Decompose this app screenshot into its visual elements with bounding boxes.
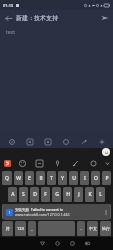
staticText: D [33, 191, 37, 198]
staticText: L [99, 191, 102, 198]
staticText: 换行 [102, 226, 110, 231]
button[interactable]: Search [84, 157, 102, 170]
staticText: F [44, 191, 47, 198]
staticText: C [45, 208, 49, 215]
staticText: J [78, 191, 80, 198]
button[interactable]: Attachment option 3 [41, 135, 54, 148]
staticText: 安装失败 Failed to connect to [15, 207, 64, 212]
button[interactable]: Recents [65, 237, 80, 250]
staticText: V [56, 208, 60, 215]
button[interactable]: Attachment option 6 [95, 135, 108, 148]
staticText: Z [23, 208, 26, 215]
button[interactable]: L [96, 187, 105, 202]
staticText: P [105, 175, 109, 182]
staticText: G [55, 191, 59, 198]
button[interactable]: E [25, 171, 34, 185]
staticText: Y [61, 175, 64, 182]
button[interactable]: F [41, 187, 50, 202]
button[interactable]: S [19, 187, 28, 202]
staticText: B [67, 208, 71, 215]
staticText: R [39, 175, 43, 182]
button[interactable]: Emoji [14, 157, 31, 170]
staticText: 123 [17, 226, 24, 231]
button[interactable]: . [77, 221, 85, 236]
staticText: 01:15 [3, 3, 14, 8]
button[interactable]: , [28, 221, 36, 236]
button[interactable]: Back [0, 10, 16, 26]
button[interactable]: Handwriting [66, 157, 84, 170]
button[interactable]: ⌫ [97, 204, 111, 219]
staticText: ! [9, 210, 11, 215]
button[interactable]: X [31, 204, 40, 219]
button[interactable]: J [74, 187, 83, 202]
button[interactable]: Attachment option 2 [23, 135, 36, 148]
staticText: ⇧ [8, 209, 12, 214]
button[interactable]: I [80, 171, 89, 185]
staticText: A [11, 191, 15, 198]
staticText: W [16, 175, 21, 182]
staticText: H [66, 191, 70, 198]
staticText: K [88, 191, 92, 198]
staticText: text [6, 29, 15, 36]
staticText: 符 [6, 226, 10, 231]
button[interactable]: ⇧ [2, 204, 17, 219]
button[interactable]: 中文 [87, 221, 98, 236]
button[interactable]: Back [35, 237, 50, 250]
button[interactable]: P [102, 171, 111, 185]
button[interactable]: C [42, 204, 51, 219]
button[interactable]: Screenshot [80, 237, 95, 250]
staticText: U [72, 175, 76, 182]
button[interactable]: T [47, 171, 56, 185]
button[interactable]: O [91, 171, 100, 185]
button[interactable]: Q [2, 171, 12, 185]
staticText: E [28, 175, 31, 182]
staticText: O [94, 175, 98, 182]
button[interactable]: Voice input [48, 157, 66, 170]
button[interactable]: R [36, 171, 45, 185]
staticText: 新建：技术支持 [16, 14, 58, 22]
button[interactable]: Hide keyboard [102, 157, 113, 170]
staticText: I [84, 175, 86, 182]
button[interactable]: Attachment option 1 [5, 135, 18, 148]
staticText: T [50, 175, 53, 182]
button[interactable]: U [69, 171, 78, 185]
staticText: ⌫ [101, 209, 107, 214]
button[interactable]: D [30, 187, 39, 202]
button[interactable]: 123 [15, 221, 26, 236]
button[interactable]: K [85, 187, 94, 202]
button[interactable]: W [14, 171, 23, 185]
button[interactable]: A [8, 187, 17, 202]
staticText: Q [5, 175, 9, 182]
button[interactable]: 换行 [100, 221, 111, 236]
button[interactable]: H [63, 187, 72, 202]
button[interactable]: Y [58, 171, 67, 185]
staticText: X [34, 208, 38, 215]
staticText: www.rwtools0.com/127.0.0.1:443 [15, 212, 70, 217]
button[interactable]: Home [50, 237, 65, 250]
button[interactable]: Clipboard [31, 157, 48, 170]
button[interactable]: ! [3, 204, 110, 220]
button[interactable]: Z [19, 204, 29, 219]
button[interactable]: V [53, 204, 62, 219]
button[interactable]: Send [97, 10, 113, 26]
button[interactable]: Attachment option 5 [77, 135, 90, 148]
staticText: . [80, 226, 82, 231]
button[interactable]: Attachment option 4 [59, 135, 72, 148]
button[interactable]: B [64, 204, 73, 219]
staticText: S [22, 191, 25, 198]
staticText: 中文 [89, 226, 97, 231]
button[interactable]: 符 [2, 221, 13, 236]
button[interactable]: Input method logo [0, 157, 14, 170]
button[interactable]: G [52, 187, 61, 202]
button[interactable]: Emoji avatar [102, 148, 110, 156]
staticText: , [31, 226, 33, 231]
